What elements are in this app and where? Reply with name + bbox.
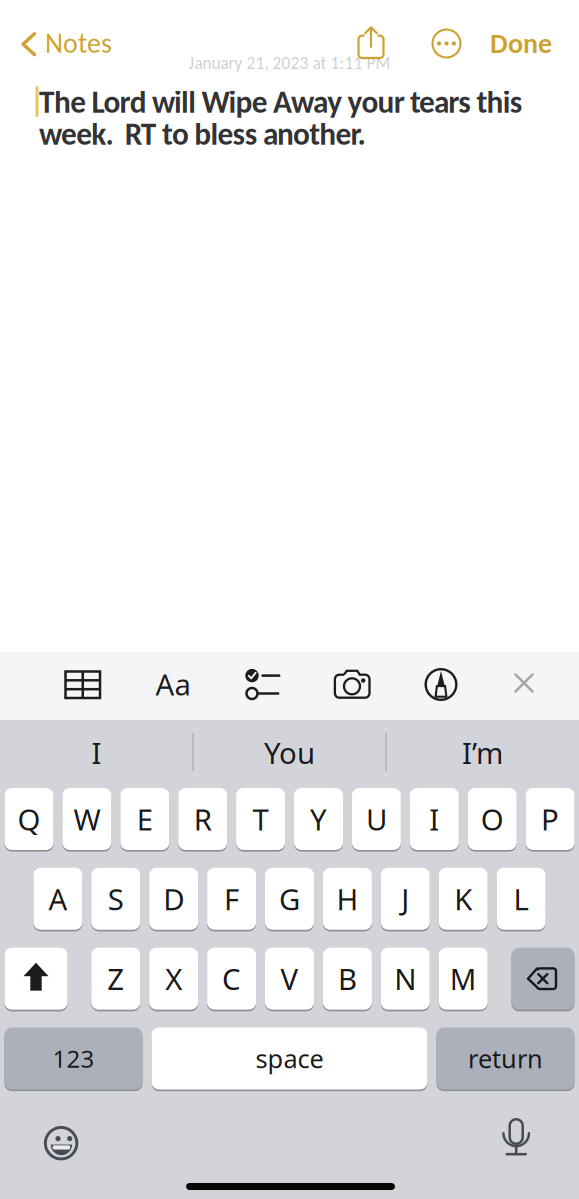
button[interactable]: Markup <box>413 656 469 712</box>
staticText: D <box>163 879 184 918</box>
staticText: B <box>338 959 357 998</box>
staticText: space <box>255 1042 323 1075</box>
button[interactable]: B <box>323 947 372 1011</box>
button[interactable]: return <box>436 1026 574 1090</box>
staticText: A <box>48 879 67 918</box>
staticText: You <box>264 733 315 772</box>
staticText: E <box>137 799 153 838</box>
button[interactable]: R <box>178 787 227 851</box>
button[interactable]: S <box>91 867 140 931</box>
staticText: H <box>336 879 358 918</box>
staticText: I’m <box>462 733 503 772</box>
button[interactable]: Checklist <box>233 656 289 712</box>
button[interactable]: Delete <box>511 947 574 1011</box>
button[interactable]: O <box>468 787 517 851</box>
button[interactable]: N <box>381 947 430 1011</box>
staticText: F <box>224 879 239 918</box>
staticText: The Lord will Wipe Away your tears this <box>39 83 523 121</box>
button[interactable]: Back <box>0 0 120 70</box>
button[interactable]: T <box>236 787 285 851</box>
button[interactable]: Y <box>294 787 343 851</box>
button[interactable]: I’m <box>392 724 572 780</box>
staticText: R <box>194 799 212 838</box>
button[interactable]: I <box>410 787 459 851</box>
staticText: U <box>366 799 387 838</box>
staticText: S <box>108 879 124 918</box>
button[interactable]: U <box>352 787 401 851</box>
button[interactable]: Dismiss keyboard <box>496 655 552 711</box>
button[interactable]: Insert table <box>55 656 111 712</box>
staticText: M <box>450 959 477 998</box>
button[interactable]: X <box>149 947 198 1011</box>
button[interactable]: You <box>199 724 379 780</box>
button[interactable]: D <box>149 867 198 931</box>
button[interactable]: I <box>6 724 186 780</box>
staticText: G <box>279 879 300 918</box>
staticText: T <box>253 799 269 838</box>
button[interactable]: Emoji <box>42 1118 86 1162</box>
staticText: O <box>481 799 504 838</box>
button[interactable]: J <box>381 867 430 931</box>
button[interactable]: L <box>497 867 546 931</box>
staticText: January 21, 2023 at 1:11 PM <box>188 52 390 74</box>
staticText: I <box>91 733 101 772</box>
button[interactable]: Z <box>91 947 140 1011</box>
button[interactable]: P <box>526 787 575 851</box>
staticText: Q <box>17 799 40 838</box>
button[interactable]: Share <box>349 21 393 65</box>
staticText: return <box>468 1042 543 1075</box>
staticText: L <box>514 879 529 918</box>
staticText: V <box>280 959 298 998</box>
staticText: I <box>429 799 439 838</box>
staticText: Y <box>310 799 327 838</box>
button[interactable]: Done <box>490 26 552 61</box>
staticText: J <box>401 879 409 918</box>
staticText: Notes <box>45 26 112 60</box>
button[interactable]: C <box>207 947 256 1011</box>
button[interactable]: Dictate <box>494 1118 538 1162</box>
button[interactable]: K <box>439 867 488 931</box>
staticText: Done <box>490 26 552 61</box>
button[interactable]: space <box>151 1026 427 1090</box>
staticText: X <box>165 959 182 998</box>
button[interactable]: F <box>207 867 256 931</box>
button[interactable]: More <box>426 23 466 63</box>
staticText: Aa <box>155 664 190 703</box>
button[interactable]: H <box>323 867 372 931</box>
staticText: C <box>222 959 241 998</box>
button[interactable]: G <box>265 867 314 931</box>
staticText: 123 <box>52 1043 94 1074</box>
staticText: K <box>454 879 472 918</box>
button[interactable]: E <box>120 787 169 851</box>
staticText: W <box>73 799 100 838</box>
button[interactable]: W <box>62 787 111 851</box>
staticText: N <box>394 959 416 998</box>
button[interactable]: M <box>439 947 488 1011</box>
button[interactable]: Q <box>4 787 53 851</box>
button[interactable]: Shift <box>4 947 67 1011</box>
button[interactable]: Insert photo <box>323 656 379 712</box>
staticText: P <box>541 799 559 838</box>
button[interactable]: 123 <box>4 1026 142 1090</box>
staticText: Z <box>107 959 124 998</box>
button[interactable]: A <box>33 867 82 931</box>
button[interactable]: V <box>265 947 314 1011</box>
staticText: week. RT to bless another. <box>39 115 366 153</box>
button[interactable]: Formatting <box>145 656 201 712</box>
